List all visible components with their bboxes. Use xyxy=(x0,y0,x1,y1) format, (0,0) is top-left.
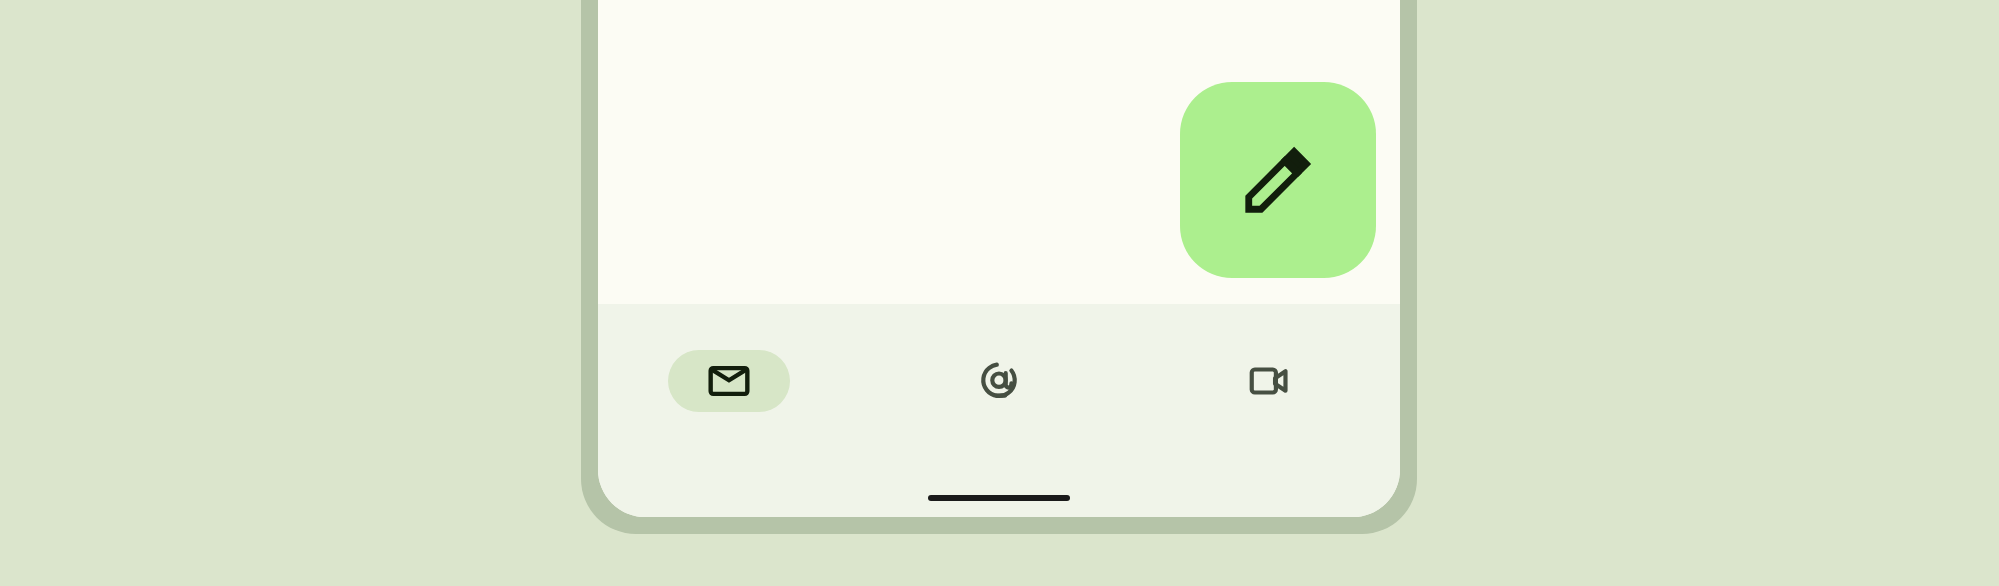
button[interactable]: Compose xyxy=(1180,82,1376,278)
button[interactable]: Video call xyxy=(1170,336,1368,426)
button[interactable]: Mail xyxy=(630,336,828,426)
button[interactable]: Mentions xyxy=(900,336,1098,426)
